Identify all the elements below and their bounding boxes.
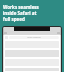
button[interactable]: Safari browser preview — [2, 26, 62, 72]
button[interactable]: Address bar — [9, 36, 59, 39]
staticText: full speed — [3, 16, 61, 22]
staticText: Enter Website — [27, 36, 41, 39]
staticText: Works seamless — [3, 4, 61, 10]
staticText: inside Safari at — [3, 10, 61, 16]
